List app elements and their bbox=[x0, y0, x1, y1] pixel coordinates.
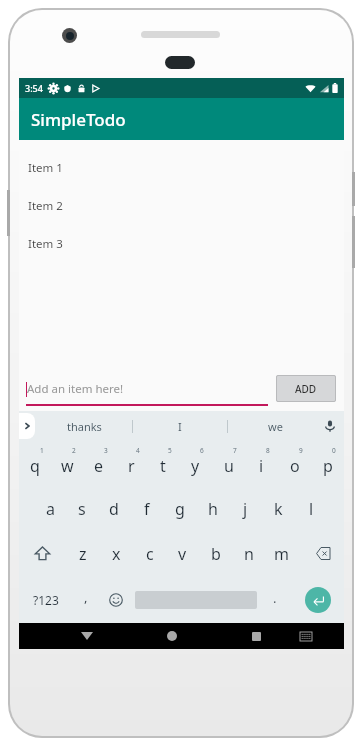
button[interactable]: m bbox=[265, 531, 298, 576]
button[interactable]: Switch keyboard bbox=[280, 623, 331, 649]
button[interactable]: 0 bbox=[311, 441, 344, 487]
staticText: c bbox=[146, 543, 154, 565]
button[interactable]: ADD bbox=[276, 375, 336, 402]
staticText: SimpleTodo bbox=[31, 108, 126, 131]
button[interactable]: I bbox=[133, 411, 227, 441]
button[interactable]: c bbox=[133, 531, 166, 576]
button[interactable]: Space bbox=[132, 576, 259, 623]
staticText: thanks bbox=[67, 419, 102, 434]
staticText: I bbox=[178, 419, 182, 434]
button[interactable]: v bbox=[166, 531, 199, 576]
staticText: ?123 bbox=[33, 592, 59, 608]
staticText: 7 bbox=[233, 446, 237, 455]
button[interactable]: 4 bbox=[115, 441, 147, 487]
button[interactable]: 5 bbox=[147, 441, 179, 487]
button[interactable]: Item 3 bbox=[19, 225, 344, 263]
staticText: . bbox=[273, 589, 277, 607]
button[interactable]: Emoji bbox=[100, 576, 132, 623]
button[interactable]: b bbox=[199, 531, 232, 576]
staticText: i bbox=[259, 455, 264, 477]
button[interactable]: l bbox=[295, 487, 328, 531]
button[interactable]: 7 bbox=[212, 441, 245, 487]
button[interactable]: a bbox=[34, 487, 66, 531]
staticText: k bbox=[274, 498, 283, 520]
button[interactable]: we bbox=[228, 411, 322, 441]
button[interactable]: Enter bbox=[291, 576, 344, 623]
staticText: Item 2 bbox=[28, 198, 63, 214]
button[interactable]: 6 bbox=[179, 441, 212, 487]
staticText: z bbox=[79, 543, 87, 565]
button[interactable]: Shift bbox=[19, 531, 66, 576]
staticText: n bbox=[244, 543, 254, 565]
staticText: d bbox=[109, 498, 119, 520]
staticText: 3:54 bbox=[25, 82, 43, 94]
button[interactable]: thanks bbox=[37, 411, 132, 441]
button[interactable]: 2 bbox=[51, 441, 83, 487]
staticText: x bbox=[112, 543, 121, 565]
staticText: e bbox=[94, 455, 104, 477]
button[interactable]: Back bbox=[63, 623, 110, 649]
staticText: Item 1 bbox=[28, 160, 63, 176]
staticText: 8 bbox=[266, 446, 270, 455]
button[interactable]: Add an item here! bbox=[26, 372, 268, 406]
staticText: o bbox=[290, 455, 300, 477]
staticText: b bbox=[211, 543, 221, 565]
button[interactable]: 3 bbox=[83, 441, 115, 487]
button[interactable]: Recents bbox=[233, 623, 280, 649]
staticText: v bbox=[178, 543, 187, 565]
staticText: ADD bbox=[295, 382, 317, 396]
staticText: 9 bbox=[299, 446, 303, 455]
button[interactable]: 9 bbox=[278, 441, 311, 487]
staticText: y bbox=[191, 455, 200, 477]
staticText: g bbox=[175, 498, 185, 520]
button[interactable]: 8 bbox=[245, 441, 278, 487]
staticText: r bbox=[128, 455, 135, 477]
staticText: s bbox=[78, 498, 86, 520]
button[interactable]: k bbox=[262, 487, 295, 531]
staticText: f bbox=[144, 498, 150, 520]
staticText: 1 bbox=[40, 446, 44, 455]
staticText: h bbox=[208, 498, 218, 520]
staticText: a bbox=[46, 498, 55, 520]
staticText: 5 bbox=[168, 446, 172, 455]
staticText: u bbox=[224, 455, 234, 477]
button[interactable]: Expand suggestions bbox=[19, 413, 35, 439]
staticText: Item 3 bbox=[28, 236, 63, 252]
button[interactable]: s bbox=[66, 487, 98, 531]
staticText: q bbox=[30, 455, 40, 477]
button[interactable]: z bbox=[66, 531, 100, 576]
button[interactable]: h bbox=[196, 487, 229, 531]
button[interactable]: Item 2 bbox=[19, 187, 344, 225]
staticText: we bbox=[268, 419, 283, 434]
button[interactable]: 1 bbox=[19, 441, 51, 487]
button[interactable]: n bbox=[232, 531, 265, 576]
button[interactable]: . bbox=[259, 576, 291, 623]
staticText: m bbox=[274, 543, 289, 565]
staticText: Add an item here! bbox=[27, 381, 124, 397]
staticText: 4 bbox=[136, 446, 140, 455]
button[interactable]: d bbox=[98, 487, 130, 531]
staticText: j bbox=[243, 498, 248, 520]
staticText: l bbox=[309, 498, 314, 520]
button[interactable]: ?123 bbox=[19, 576, 72, 623]
staticText: 3 bbox=[104, 446, 108, 455]
staticText: 6 bbox=[200, 446, 204, 455]
button[interactable]: Voice input bbox=[321, 417, 339, 435]
button[interactable]: f bbox=[130, 487, 163, 531]
staticText: 2 bbox=[72, 446, 76, 455]
button[interactable]: Backspace bbox=[298, 531, 344, 576]
staticText: p bbox=[323, 455, 333, 477]
button[interactable]: , bbox=[72, 576, 100, 623]
button[interactable]: Item 1 bbox=[19, 149, 344, 187]
button[interactable]: g bbox=[163, 487, 196, 531]
staticText: w bbox=[61, 455, 74, 477]
staticText: , bbox=[84, 588, 88, 606]
button[interactable]: Home bbox=[148, 623, 195, 649]
button[interactable]: j bbox=[229, 487, 262, 531]
staticText: 0 bbox=[332, 446, 336, 455]
button[interactable]: x bbox=[100, 531, 133, 576]
staticText: t bbox=[160, 455, 166, 477]
